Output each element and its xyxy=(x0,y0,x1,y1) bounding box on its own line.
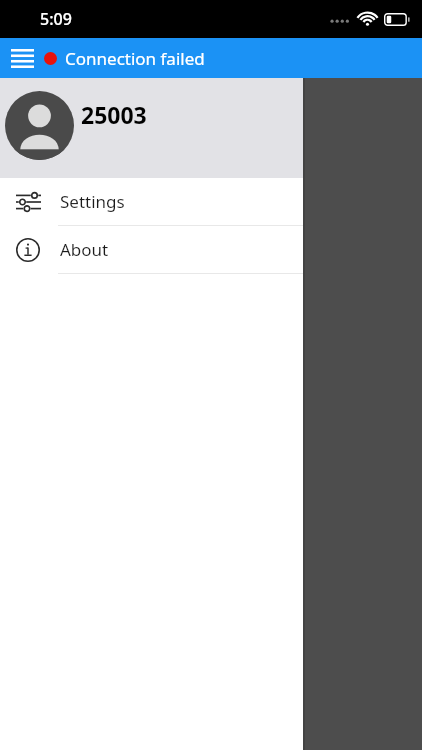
button[interactable]: 25003 xyxy=(0,78,303,178)
staticText: 25003 xyxy=(81,99,147,130)
staticText: Settings xyxy=(60,190,125,213)
staticText: 5:09 xyxy=(40,8,72,30)
button[interactable]: About xyxy=(0,226,303,273)
button[interactable]: Settings xyxy=(0,178,303,225)
staticText: Connection failed xyxy=(65,47,205,70)
button[interactable]: Open navigation drawer xyxy=(4,40,40,76)
staticText: About xyxy=(60,238,109,261)
